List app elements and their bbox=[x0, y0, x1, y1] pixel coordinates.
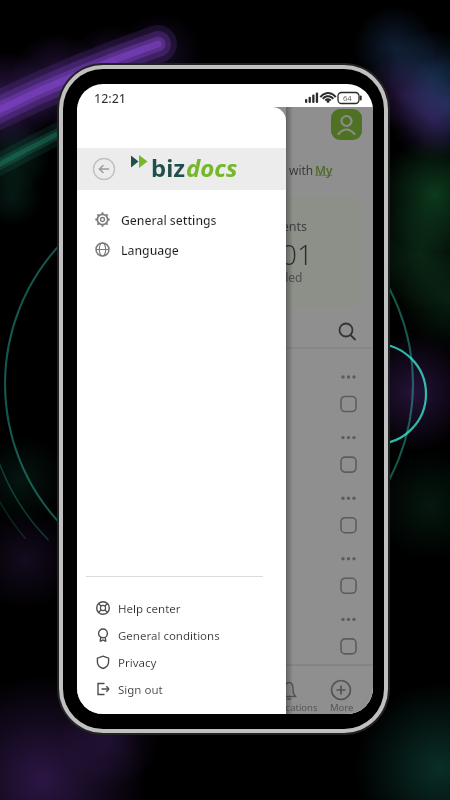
staticText: Language bbox=[121, 242, 179, 259]
button[interactable] bbox=[91, 626, 271, 647]
button[interactable] bbox=[91, 207, 269, 231]
staticText: docs bbox=[186, 151, 238, 184]
staticText: 01 bbox=[281, 235, 313, 273]
button[interactable] bbox=[91, 680, 271, 701]
staticText: Notifications bbox=[261, 701, 318, 714]
button[interactable] bbox=[91, 653, 271, 674]
staticText: Privacy bbox=[118, 655, 157, 671]
staticText: Sign out bbox=[118, 682, 163, 698]
staticText: More bbox=[330, 701, 354, 714]
button[interactable] bbox=[331, 109, 362, 140]
staticText: General conditions bbox=[118, 628, 220, 644]
staticText: documents bbox=[241, 218, 307, 235]
button[interactable] bbox=[91, 599, 271, 620]
staticText: with bbox=[289, 162, 314, 178]
staticText: General settings bbox=[121, 212, 217, 229]
staticText: Help center bbox=[118, 601, 181, 617]
staticText: 64 bbox=[343, 93, 352, 103]
staticText: biz bbox=[151, 151, 186, 184]
button[interactable] bbox=[93, 158, 115, 180]
button[interactable] bbox=[91, 237, 269, 261]
staticText: My bbox=[315, 162, 333, 178]
staticText: 12:21 bbox=[94, 90, 127, 107]
staticText: uploaded bbox=[249, 269, 303, 285]
